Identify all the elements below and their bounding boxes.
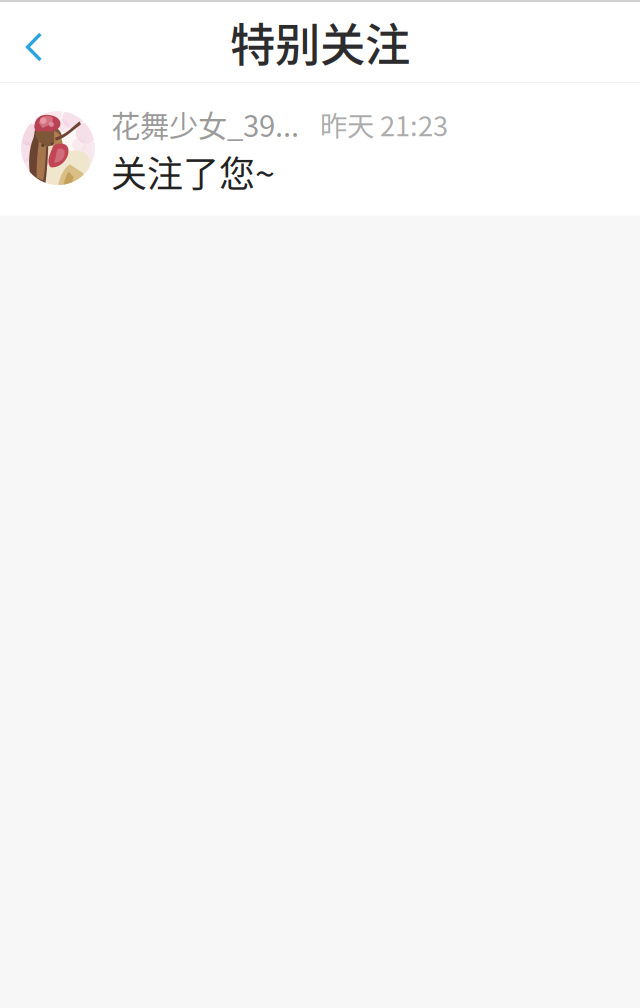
button[interactable]: Back <box>0 2 68 82</box>
staticText: 花舞少女_39... <box>111 103 299 145</box>
button[interactable]: 花舞少女_39... <box>0 83 640 216</box>
staticText: 昨天 21:23 <box>320 104 448 144</box>
staticText: 关注了您~ <box>111 145 275 198</box>
staticText: 特别关注 <box>230 9 410 75</box>
